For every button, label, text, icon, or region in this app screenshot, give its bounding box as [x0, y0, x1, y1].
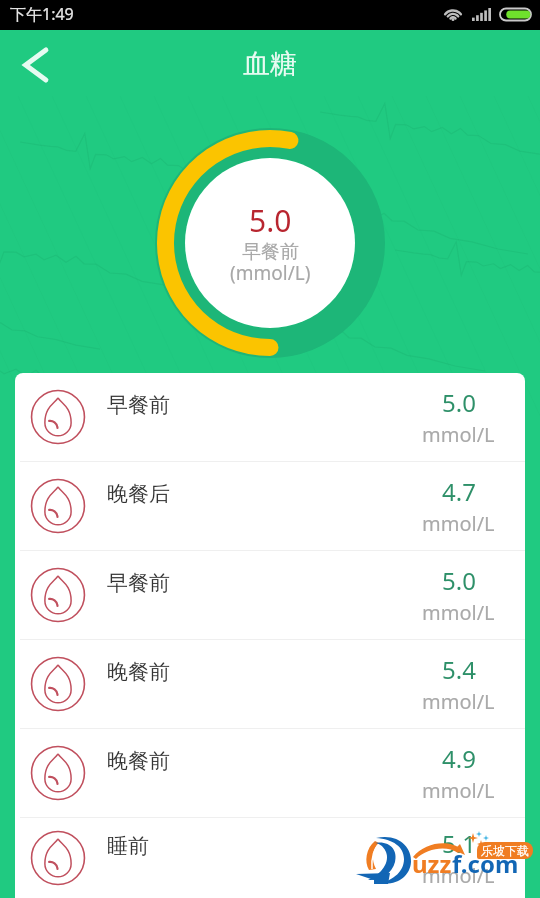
staticText: 5.4: [442, 653, 476, 686]
staticText: 4.7: [442, 475, 476, 508]
staticText: mmol/L: [422, 777, 495, 804]
staticText: mmol/L: [422, 599, 495, 626]
button[interactable]: 晚餐后: [15, 462, 525, 550]
staticText: 5.1: [442, 827, 476, 860]
staticText: mmol/L: [422, 688, 495, 715]
button[interactable]: 睡前: [15, 818, 525, 898]
staticText: 血糖: [243, 47, 297, 81]
staticText: 早餐前: [242, 240, 299, 264]
staticText: 5.0: [249, 200, 292, 241]
button[interactable]: Back: [0, 34, 62, 96]
staticText: f.com: [452, 847, 519, 880]
staticText: 4.9: [442, 742, 476, 775]
staticText: uzz: [412, 847, 452, 880]
staticText: 下午1:49: [10, 3, 74, 25]
staticText: 5.0: [442, 386, 476, 419]
staticText: 早餐前: [107, 570, 170, 596]
button[interactable]: 晚餐前: [15, 640, 525, 728]
button[interactable]: 晚餐前: [15, 729, 525, 817]
staticText: 5.0: [442, 564, 476, 597]
staticText: mmol/L: [422, 862, 495, 889]
button[interactable]: 早餐前: [15, 551, 525, 639]
staticText: 晚餐后: [107, 481, 170, 507]
staticText: mmol/L: [422, 510, 495, 537]
staticText: 乐坡下载: [481, 843, 529, 858]
staticText: 晚餐前: [107, 748, 170, 774]
staticText: (mmol/L): [230, 260, 311, 286]
button[interactable]: 早餐前: [15, 373, 525, 461]
staticText: mmol/L: [422, 421, 495, 448]
staticText: 晚餐前: [107, 659, 170, 685]
staticText: 早餐前: [107, 392, 170, 418]
staticText: 睡前: [107, 833, 149, 859]
